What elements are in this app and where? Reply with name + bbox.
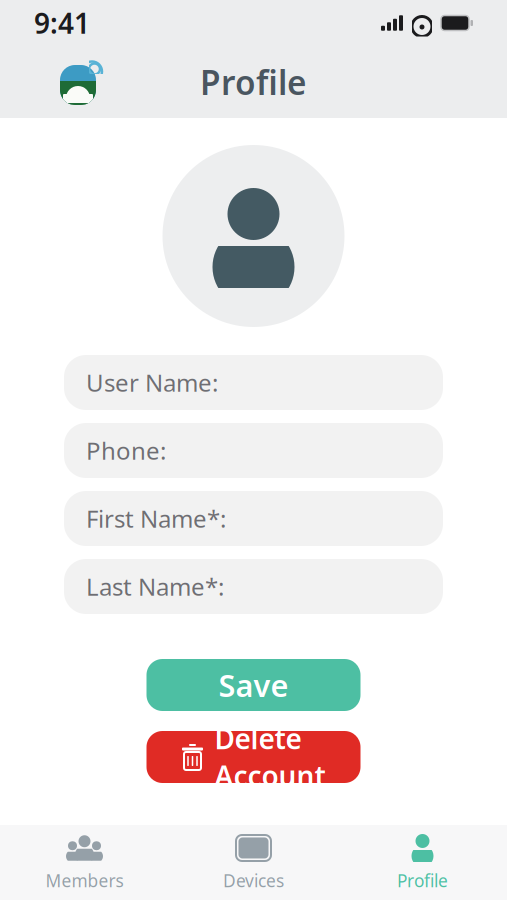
button[interactable]: First Name*: [64, 491, 443, 546]
staticText: Delete Account [214, 720, 325, 794]
staticText: Members [45, 869, 123, 892]
button[interactable]: Devices [169, 825, 338, 900]
button[interactable]: Home [56, 56, 108, 108]
staticText: User Name: [86, 367, 218, 398]
staticText: Last Name*: [86, 571, 224, 602]
button[interactable]: Profile [338, 825, 507, 900]
staticText: Save [218, 665, 288, 705]
staticText: First Name*: [86, 503, 226, 534]
button[interactable]: Last Name*: [64, 559, 443, 614]
staticText: Profile [397, 869, 448, 892]
button[interactable]: Delete Account [146, 731, 360, 783]
staticText: Phone: [86, 435, 166, 466]
button[interactable]: Members [0, 825, 169, 900]
button[interactable]: Save [146, 659, 360, 711]
staticText: 9:41 [34, 4, 90, 42]
button[interactable]: User Name: [64, 355, 443, 410]
button[interactable]: Phone: [64, 423, 443, 478]
staticText: Profile [200, 60, 307, 104]
staticText: Devices [223, 869, 284, 892]
